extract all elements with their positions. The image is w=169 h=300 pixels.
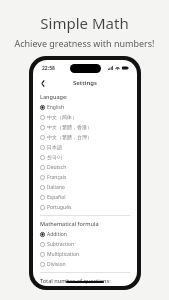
staticText: Settings [73, 79, 97, 87]
button[interactable]: English [40, 102, 130, 112]
button[interactable]: Division [40, 259, 130, 269]
button[interactable]: Back [38, 78, 48, 88]
button[interactable]: Multiplication [40, 249, 130, 259]
button[interactable]: 日本語 [40, 142, 130, 152]
staticText: Subtraction [47, 241, 75, 248]
staticText: Italiano [47, 184, 65, 191]
button[interactable]: Subtraction [40, 239, 130, 249]
button[interactable]: Deutsch [40, 162, 130, 172]
staticText: Français [47, 174, 67, 181]
staticText: 한국어 [47, 154, 62, 160]
staticText: Division [47, 261, 66, 268]
staticText: Mathematical formula [40, 220, 99, 227]
button[interactable]: 한국어 [40, 152, 130, 162]
staticText: Deutsch [47, 164, 67, 171]
staticText: 日本語 [47, 144, 62, 150]
button[interactable]: Italiano [40, 182, 130, 192]
staticText: Language: [40, 93, 68, 100]
staticText: English [47, 104, 65, 111]
staticText: Addition [47, 231, 67, 238]
staticText: 中文（繁體，台灣） [47, 134, 92, 140]
staticText: Simple Math [40, 13, 129, 33]
staticText: Achieve greatness with numbers! [14, 37, 155, 49]
staticText: Multiplication [47, 251, 80, 258]
staticText: 中文（繁體，香港） [47, 124, 92, 130]
staticText: Português [47, 204, 72, 211]
button[interactable]: 中文（繁體，香港） [40, 122, 130, 132]
staticText: Total number of questions: [40, 277, 111, 284]
button[interactable]: Français [40, 172, 130, 182]
button[interactable]: 中文（简体） [40, 112, 130, 122]
button[interactable]: Português [40, 202, 130, 212]
button[interactable]: 中文（繁體，台灣） [40, 132, 130, 142]
staticText: 中文（简体） [47, 114, 77, 120]
button[interactable]: Addition [40, 229, 130, 239]
button[interactable]: Español [40, 192, 130, 202]
staticText: 22:58 [42, 65, 55, 72]
staticText: Español [47, 194, 66, 201]
